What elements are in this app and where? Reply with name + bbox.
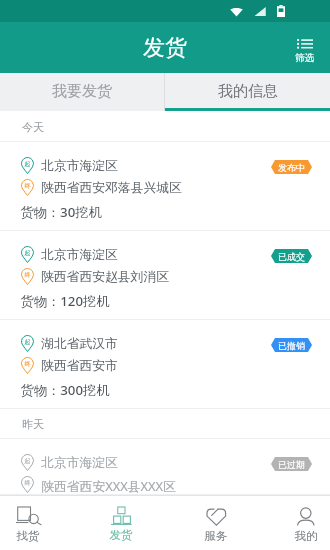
button[interactable]: 筛选	[288, 34, 321, 69]
staticText: 北京市海淀区	[41, 158, 118, 174]
staticText: 已过期	[278, 459, 305, 470]
staticText: 终	[24, 182, 31, 190]
staticText: 湖北省武汉市	[41, 336, 118, 352]
button[interactable]: 我的信息	[165, 73, 330, 111]
staticText: 起	[24, 160, 31, 168]
staticText: 货物：300挖机	[20, 381, 110, 399]
staticText: 我的	[294, 529, 318, 544]
button[interactable]: 起	[0, 231, 330, 320]
staticText: 陕西省西安邓落县兴城区	[41, 180, 182, 196]
staticText: 起	[24, 249, 31, 257]
staticText: 北京市海淀区	[41, 455, 118, 471]
staticText: 终	[24, 360, 31, 368]
staticText: 陕西省西安赵县刘消区	[41, 269, 169, 285]
button[interactable]: 起	[0, 142, 330, 231]
staticText: 发货	[143, 34, 187, 62]
staticText: 终	[24, 479, 31, 487]
button[interactable]: 找货	[0, 507, 66, 550]
staticText: 已成交	[278, 251, 305, 262]
staticText: 发货	[109, 528, 133, 543]
staticText: 终	[24, 271, 31, 279]
staticText: 货物：120挖机	[20, 292, 110, 310]
staticText: 昨天	[22, 417, 44, 431]
staticText: 找货	[16, 529, 40, 544]
button[interactable]: 发货	[83, 507, 159, 550]
button[interactable]: 我的	[268, 507, 330, 550]
button[interactable]: 服务	[178, 507, 254, 550]
staticText: 起	[24, 457, 31, 465]
staticText: 今天	[22, 120, 44, 134]
button[interactable]: 我要发货	[0, 73, 164, 111]
staticText: 货物：30挖机	[20, 203, 102, 221]
button[interactable]: 起	[0, 320, 330, 409]
staticText: 发布中	[278, 162, 305, 173]
staticText: 货物：30挖机	[20, 500, 102, 518]
button[interactable]: 起	[0, 439, 330, 495]
staticText: 我要发货	[52, 82, 112, 101]
staticText: 北京市海淀区	[41, 247, 118, 263]
staticText: 筛选	[295, 52, 314, 64]
staticText: 起	[24, 338, 31, 346]
staticText: 陕西省西安市	[41, 358, 118, 374]
staticText: 服务	[204, 529, 228, 544]
staticText: 陕西省西安XXX县XXX区	[41, 477, 176, 494]
staticText: 已撤销	[278, 340, 305, 351]
staticText: 我的信息	[218, 82, 278, 101]
